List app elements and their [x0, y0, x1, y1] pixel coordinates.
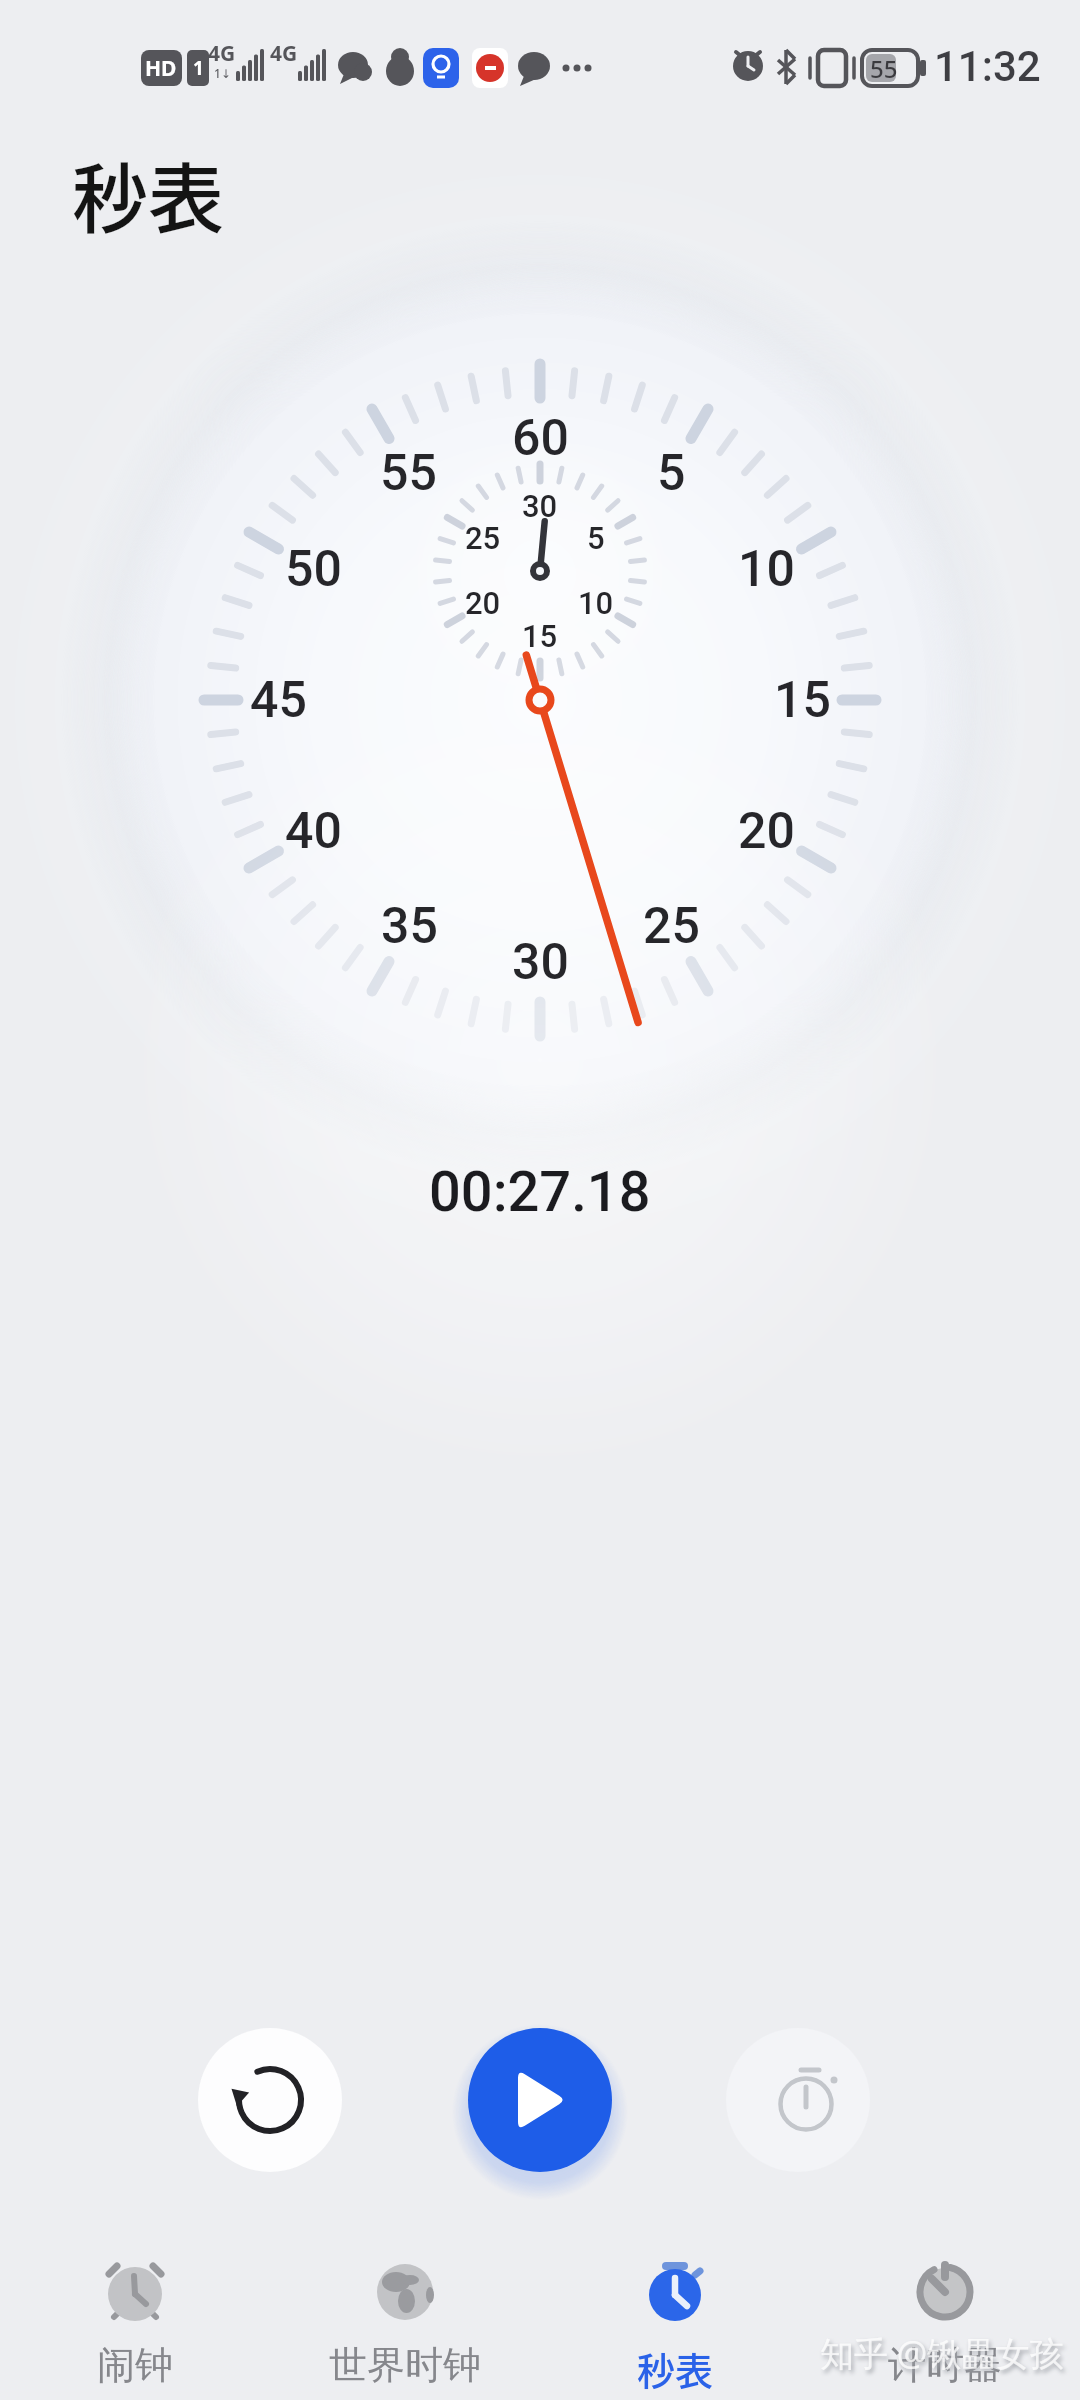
staticText: 40	[285, 802, 342, 861]
staticText: 5	[587, 520, 605, 556]
staticText: 秒表	[637, 2341, 714, 2396]
button[interactable]: 秒表	[540, 2232, 810, 2400]
staticText: 55	[870, 52, 898, 85]
staticText: 30	[512, 933, 569, 992]
staticText: 15	[774, 671, 831, 730]
staticText: 5	[657, 444, 686, 503]
staticText: 世界时钟	[329, 2341, 481, 2389]
staticText: 知乎 @锹畾女孩	[820, 2330, 1064, 2376]
staticText: 60	[512, 409, 569, 468]
staticText: 20	[738, 802, 795, 861]
button[interactable]	[726, 2028, 870, 2172]
staticText: 10	[738, 540, 795, 599]
staticText: 25	[465, 520, 501, 556]
staticText: 1↓	[214, 65, 231, 81]
staticText: 20	[465, 585, 501, 621]
button[interactable]: 世界时钟	[270, 2232, 540, 2400]
button[interactable]: 闹钟	[0, 2232, 270, 2400]
button[interactable]	[198, 2028, 342, 2172]
staticText: 秒表	[72, 139, 224, 249]
button[interactable]: 计时器	[810, 2232, 1080, 2400]
staticText: 4G	[270, 39, 298, 68]
staticText: 闹钟	[97, 2341, 173, 2389]
staticText: 30	[522, 488, 558, 524]
button[interactable]	[468, 2028, 612, 2172]
staticText: 35	[381, 897, 438, 956]
staticText: HD	[145, 54, 177, 83]
staticText: 1	[193, 55, 204, 81]
staticText: 45	[250, 671, 307, 730]
staticText: 25	[643, 897, 700, 956]
staticText: 4G	[208, 39, 236, 68]
staticText: 55	[380, 444, 437, 503]
staticText: 10	[578, 585, 614, 621]
staticText: 15	[522, 618, 558, 654]
staticText: 50	[285, 540, 342, 599]
staticText: 00:27.18	[429, 1159, 651, 1225]
staticText: 计时器	[888, 2341, 1002, 2389]
staticText: 11:32	[934, 42, 1041, 91]
